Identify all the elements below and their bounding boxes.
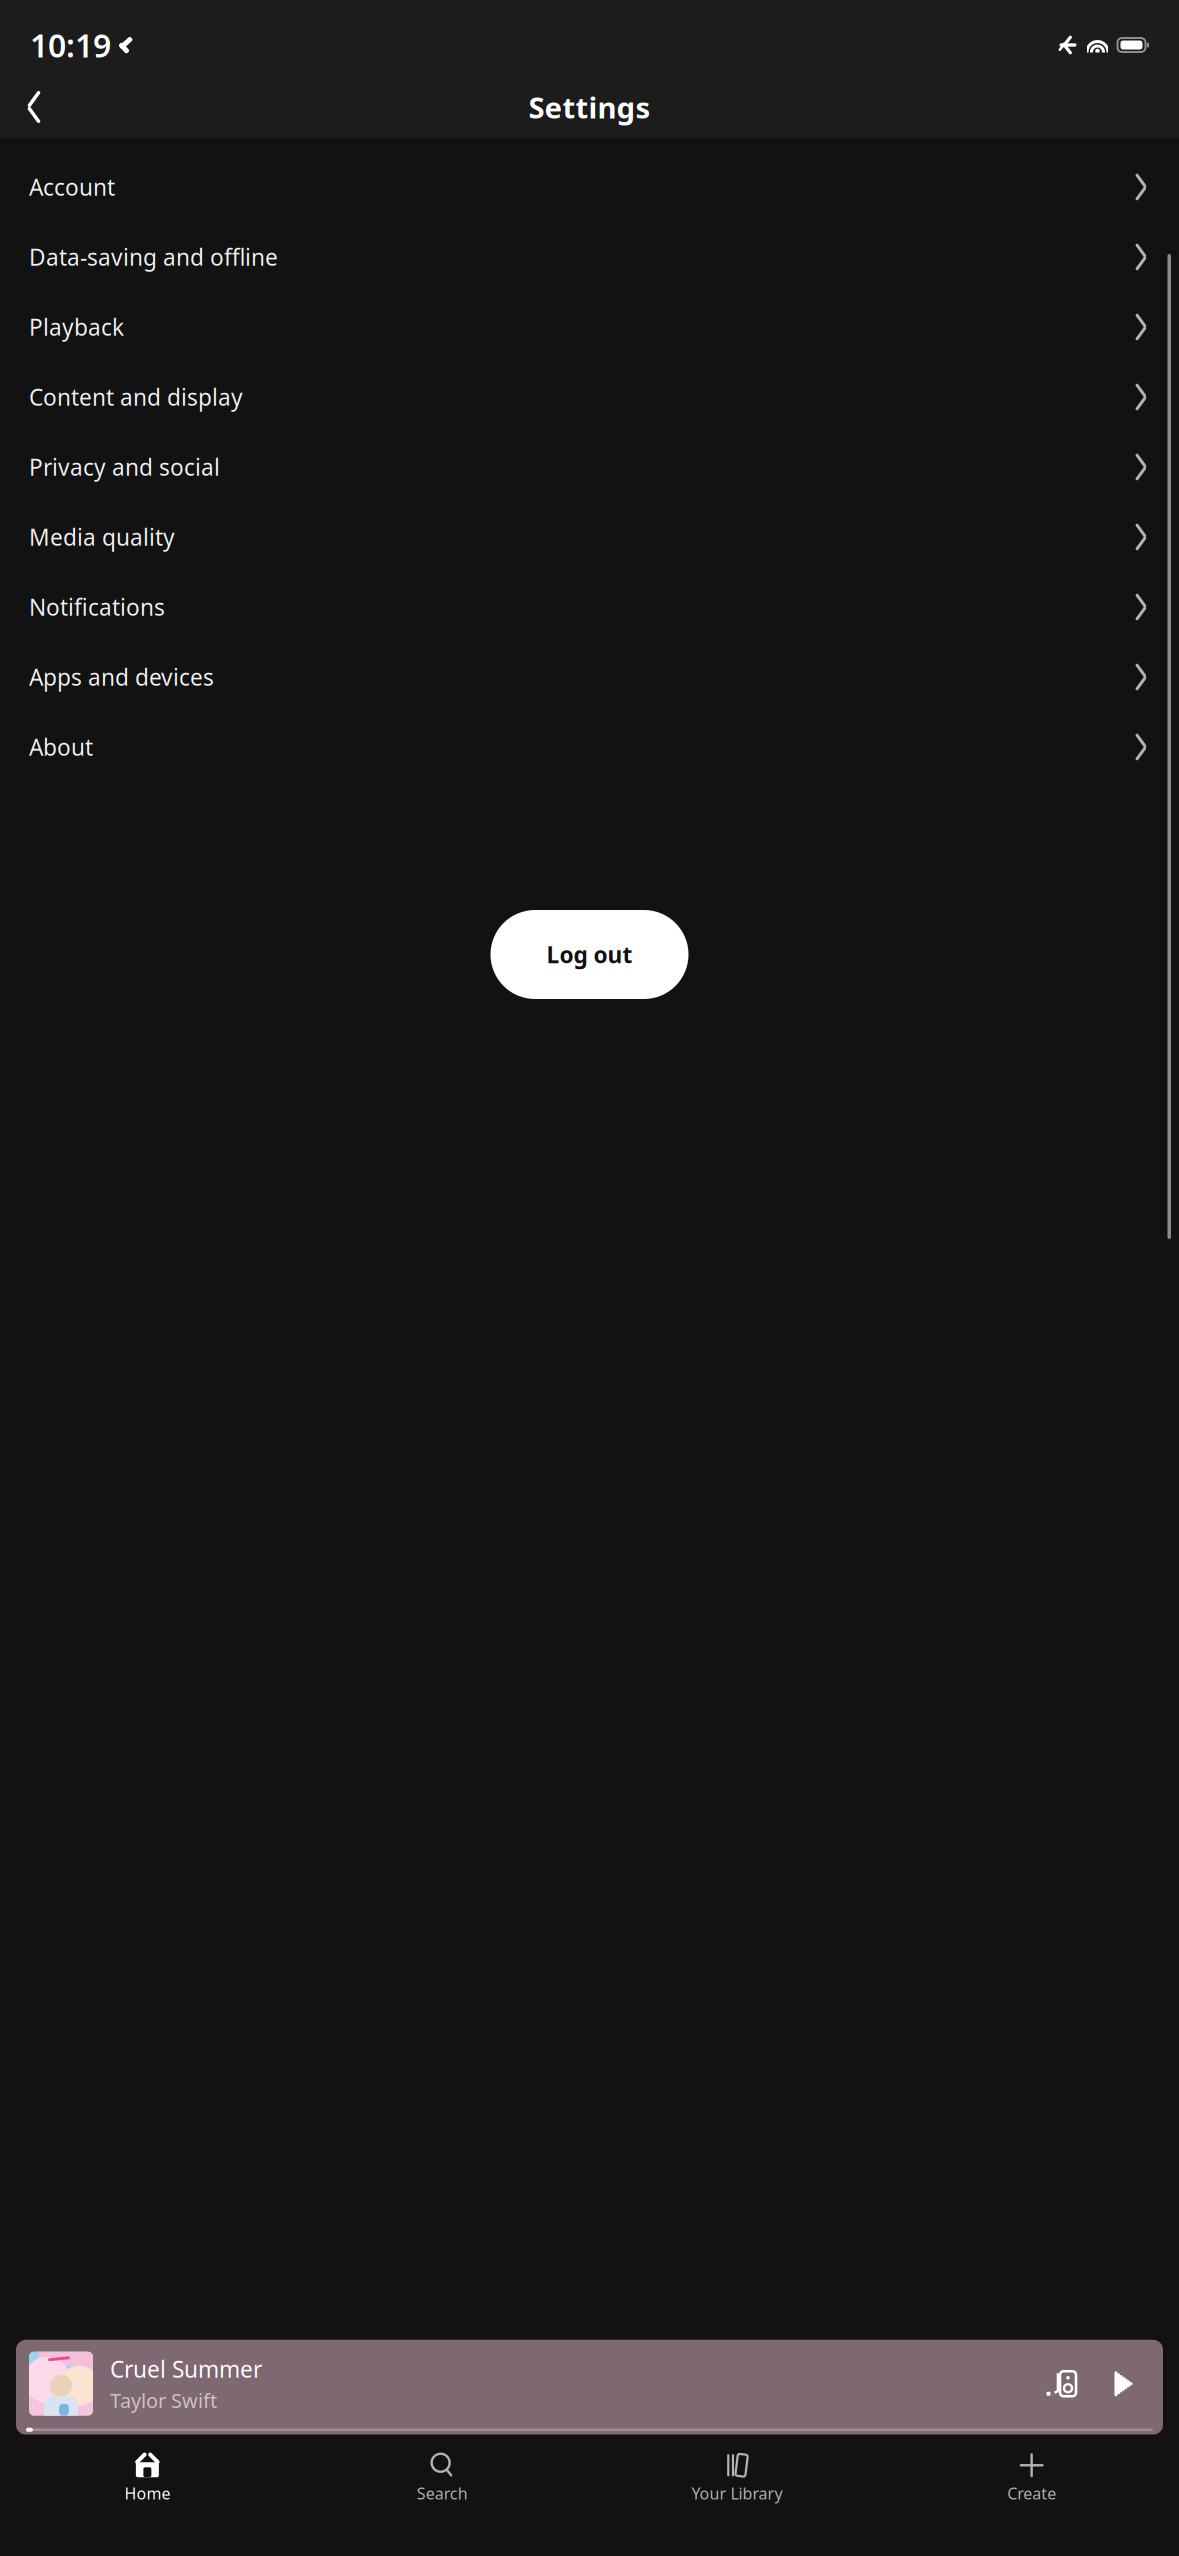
staticText: Home [124,2483,170,2504]
staticText: 10:19 [30,24,111,66]
button[interactable]: Connect to a device [1037,2360,1085,2408]
staticText: Cruel Summer [110,2354,262,2384]
button[interactable]: Apps and devices [0,642,1179,712]
staticText: About [29,732,93,762]
button[interactable]: Data-saving and offline [0,222,1179,292]
button[interactable]: Media quality [0,502,1179,572]
button[interactable]: Notifications [0,572,1179,642]
staticText: Your Library [691,2483,782,2504]
staticText: Apps and devices [29,662,214,692]
button[interactable]: Create [884,2443,1179,2510]
button[interactable]: Search [295,2443,590,2510]
staticText: Account [29,172,115,202]
staticText: Taylor Swift [110,2387,217,2414]
button[interactable]: Home [0,2443,295,2510]
staticText: Log out [546,939,632,969]
staticText: Content and display [29,382,243,412]
button[interactable]: Playback [0,292,1179,362]
button[interactable]: Play [1101,2360,1147,2408]
button[interactable]: Log out [490,910,688,999]
button[interactable]: Back [10,83,58,131]
staticText: Settings [528,87,650,126]
button[interactable]: Account [0,152,1179,222]
button[interactable]: About [0,712,1179,782]
staticText: Playback [29,312,124,342]
button[interactable]: Content and display [0,362,1179,432]
staticText: Create [1007,2483,1056,2504]
button[interactable]: Privacy and social [0,432,1179,502]
staticText: Data-saving and offline [29,242,278,272]
button[interactable]: Cruel Summer [0,2340,1179,2435]
staticText: Search [417,2483,468,2504]
button[interactable]: Your Library [589,2443,884,2510]
staticText: Privacy and social [29,452,220,482]
staticText: Notifications [29,592,165,622]
staticText: Media quality [29,522,175,552]
